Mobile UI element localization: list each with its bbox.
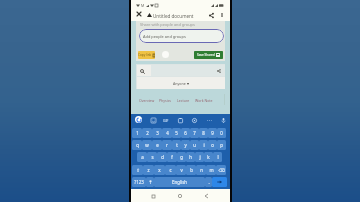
staticText: ?123 (134, 179, 144, 185)
staticText: 0 (220, 130, 223, 136)
button[interactable]: j (195, 152, 204, 162)
button[interactable]: Back (201, 191, 211, 201)
button[interactable]: n (196, 165, 206, 175)
staticText: Anyone (173, 81, 186, 86)
button[interactable]: Physics (159, 96, 172, 105)
button[interactable]: 3 (152, 128, 162, 138)
button[interactable]: Share (207, 11, 215, 19)
staticText: h (189, 154, 192, 160)
button[interactable]: Save Shared (194, 51, 223, 59)
button[interactable]: Enter (212, 177, 227, 187)
button[interactable]: Overview (139, 96, 155, 105)
button[interactable]: 6 (181, 128, 190, 138)
staticText: 2 (146, 130, 149, 136)
button[interactable]: q (132, 140, 142, 150)
button[interactable]: t (172, 140, 181, 150)
button[interactable]: i (199, 140, 208, 150)
staticText: Save Shared (197, 53, 215, 57)
button[interactable]: 7 (190, 128, 199, 138)
staticText: v (180, 167, 183, 173)
button[interactable]: h (186, 152, 195, 162)
button[interactable]: b (186, 165, 196, 175)
button[interactable]: ⇧ (132, 165, 143, 175)
button[interactable]: Anyone (137, 77, 225, 89)
button[interactable]: Add people and groups (139, 29, 224, 43)
button[interactable]: y (181, 140, 190, 150)
staticText: . (208, 179, 210, 185)
staticText: s (151, 154, 154, 160)
staticText: 3 (156, 130, 159, 136)
button[interactable]: Settings (190, 116, 198, 124)
button[interactable]: Home (175, 191, 185, 201)
staticText: e (156, 142, 159, 148)
staticText: 1 (136, 130, 139, 136)
button[interactable]: x (154, 165, 165, 175)
button[interactable]: e (152, 140, 162, 150)
staticText: c (169, 167, 172, 173)
button[interactable]: Clipboard (176, 116, 184, 124)
button[interactable]: u (190, 140, 199, 150)
button[interactable]: Voice input (219, 116, 227, 124)
button[interactable]: . (205, 177, 212, 187)
staticText: w (145, 142, 149, 148)
staticText: u (193, 142, 196, 148)
staticText: j (199, 154, 201, 160)
button[interactable]: k (204, 152, 213, 162)
button[interactable]: m (206, 165, 216, 175)
staticText: b (190, 167, 193, 173)
button[interactable]: r (162, 140, 172, 150)
staticText: y (184, 142, 187, 148)
button[interactable]: 8 (199, 128, 208, 138)
button[interactable]: g (177, 152, 186, 162)
button[interactable]: l (213, 152, 222, 162)
button[interactable]: Add person (215, 67, 223, 75)
button[interactable]: Lecture (177, 96, 190, 105)
button[interactable]: f (167, 152, 177, 162)
button[interactable]: ?123 (132, 177, 146, 187)
button[interactable]: GIF (162, 116, 170, 124)
button[interactable]: ⌫ (216, 165, 226, 175)
button[interactable]: c (165, 165, 176, 175)
button[interactable]: w (142, 140, 152, 150)
button[interactable]: 9 (208, 128, 217, 138)
staticText: 9 (211, 130, 214, 136)
button[interactable]: Close (135, 10, 143, 18)
staticText: Overview (139, 98, 155, 103)
button[interactable]: d (157, 152, 167, 162)
staticText: r (166, 142, 168, 148)
staticText: o (211, 142, 214, 148)
button[interactable]: s (147, 152, 157, 162)
button[interactable]: 4 (162, 128, 172, 138)
button[interactable]: o (208, 140, 217, 150)
button[interactable]: z (143, 165, 154, 175)
button[interactable]: Stickers (149, 116, 157, 124)
button[interactable]: v (176, 165, 186, 175)
button[interactable]: More options (205, 116, 213, 124)
staticText: English (172, 179, 187, 185)
button[interactable]: Recents (148, 191, 158, 201)
staticText: t (176, 142, 178, 148)
staticText: n (200, 167, 203, 173)
button[interactable]: Search (138, 67, 146, 75)
staticText: Share with people and groups (140, 22, 195, 27)
staticText: 4 (166, 130, 169, 136)
staticText: Untitled document (153, 13, 194, 19)
button[interactable]: 1 (132, 128, 142, 138)
button[interactable]: Copy link (138, 51, 155, 59)
button[interactable]: 5 (172, 128, 181, 138)
staticText: i (203, 142, 205, 148)
button[interactable]: 0 (217, 128, 226, 138)
button[interactable]: English (154, 177, 205, 187)
staticText: l (217, 154, 219, 160)
button[interactable]: Emoji (146, 177, 154, 187)
staticText: Physics (159, 98, 172, 103)
staticText: GIF (163, 118, 169, 123)
button[interactable]: p (217, 140, 226, 150)
button[interactable]: 2 (142, 128, 152, 138)
button[interactable]: Google (135, 116, 142, 123)
button[interactable]: More options (218, 11, 226, 19)
button[interactable]: a (137, 152, 147, 162)
staticText: M (141, 3, 145, 8)
staticText: p (220, 142, 223, 148)
button[interactable]: Work Note (195, 96, 213, 105)
